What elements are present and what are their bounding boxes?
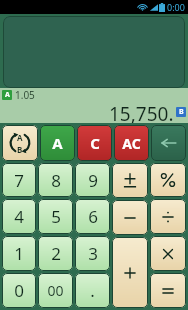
- staticText: A: [52, 133, 63, 153]
- staticText: 5: [51, 205, 61, 228]
- button[interactable]: .: [75, 273, 110, 308]
- button[interactable]: Multiply: [150, 236, 186, 271]
- staticText: 3: [88, 242, 98, 265]
- button[interactable]: 1: [2, 236, 36, 271]
- button[interactable]: 8: [38, 163, 73, 197]
- staticText: 0:00: [167, 1, 185, 13]
- button[interactable]: A: [40, 125, 75, 161]
- button[interactable]: Plus minus sign: [112, 163, 148, 198]
- staticText: 0: [14, 279, 24, 302]
- button[interactable]: Plus: [112, 237, 148, 308]
- staticText: 1: [14, 242, 24, 265]
- button[interactable]: 5: [38, 199, 73, 234]
- button[interactable]: AC: [114, 125, 149, 161]
- staticText: 9: [88, 169, 98, 192]
- button[interactable]: 6: [75, 199, 110, 234]
- button[interactable]: Swap memory A and B: [2, 125, 38, 161]
- button[interactable]: 4: [2, 199, 36, 234]
- staticText: 4: [14, 205, 24, 228]
- staticText: B: [17, 144, 23, 155]
- staticText: 7: [14, 169, 24, 192]
- button[interactable]: Minus: [112, 200, 148, 235]
- button[interactable]: Percent: [150, 163, 186, 197]
- button[interactable]: Backspace: [151, 125, 186, 161]
- staticText: 15,750.: [109, 101, 174, 123]
- staticText: 00: [47, 281, 64, 300]
- button[interactable]: 2: [38, 236, 73, 271]
- button[interactable]: Divide: [150, 199, 186, 234]
- staticText: 2: [51, 242, 61, 265]
- staticText: B: [179, 107, 184, 117]
- staticText: 1.05: [15, 88, 35, 101]
- staticText: 8: [51, 169, 61, 192]
- staticText: C: [90, 133, 100, 153]
- button[interactable]: 3: [75, 236, 110, 271]
- staticText: 6: [88, 205, 98, 228]
- staticText: AC: [122, 134, 141, 153]
- button[interactable]: 0: [2, 273, 36, 308]
- staticText: A: [5, 90, 10, 100]
- staticText: A: [17, 132, 23, 143]
- button[interactable]: C: [77, 125, 112, 161]
- button[interactable]: Equals: [150, 273, 186, 308]
- button[interactable]: 9: [75, 163, 110, 197]
- button[interactable]: 7: [2, 163, 36, 197]
- button[interactable]: 00: [38, 273, 73, 308]
- staticText: .: [90, 279, 95, 302]
